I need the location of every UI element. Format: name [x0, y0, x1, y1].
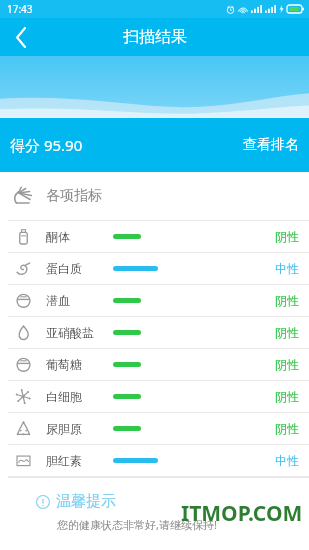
staticText: 阴性	[275, 357, 299, 372]
staticText: 17:43	[7, 2, 33, 16]
staticText: 葡萄糖	[46, 357, 82, 372]
staticText: ITMOP.COM	[181, 499, 303, 528]
staticText: 阴性	[275, 293, 299, 308]
staticText: 中性	[275, 453, 299, 468]
button[interactable]: 亚硝酸盐	[0, 317, 309, 349]
button[interactable]: 返回	[0, 18, 42, 56]
staticText: 潜血	[46, 293, 70, 308]
staticText: 阴性	[275, 325, 299, 340]
staticText: 查看排名	[243, 136, 299, 154]
staticText: 得分 95.90	[10, 135, 83, 155]
staticText: 各项指标	[46, 187, 102, 205]
staticText: 胆红素	[46, 453, 82, 468]
staticText: 您的健康状态非常好,请继续保持!	[57, 517, 217, 532]
button[interactable]: 白细胞	[0, 381, 309, 413]
staticText: 阴性	[275, 229, 299, 244]
staticText: 中性	[275, 261, 299, 276]
staticText: 温馨提示	[56, 492, 116, 511]
button[interactable]: 葡萄糖	[0, 349, 309, 381]
staticText: 白细胞	[46, 389, 82, 404]
staticText: 蛋白质	[46, 261, 82, 276]
button[interactable]: 尿胆原	[0, 413, 309, 445]
staticText: 扫描结果	[123, 27, 187, 47]
button[interactable]: 查看排名	[233, 128, 309, 162]
staticText: 尿胆原	[46, 421, 82, 436]
button[interactable]: 酮体	[0, 221, 309, 253]
button[interactable]: 潜血	[0, 285, 309, 317]
staticText: 酮体	[46, 229, 70, 244]
staticText: 阴性	[275, 389, 299, 404]
staticText: 亚硝酸盐	[46, 325, 94, 340]
button[interactable]: 胆红素	[0, 445, 309, 477]
staticText: 阴性	[275, 421, 299, 436]
button[interactable]: 蛋白质	[0, 253, 309, 285]
